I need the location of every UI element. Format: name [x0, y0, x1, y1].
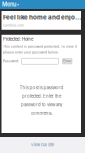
- staticText: Menu: [2, 1, 16, 8]
- staticText: This content is password protected. To v…: [3, 45, 77, 54]
- staticText: cambria.com: [3, 23, 24, 27]
- staticText: Feel like home and enjoy...: [3, 13, 81, 21]
- staticText: View Full Site: [31, 143, 54, 147]
- button[interactable]: Menu: [0, 0, 22, 9]
- button[interactable]: View Full Site: [0, 137, 85, 153]
- button[interactable]: Enter: [62, 58, 72, 64]
- staticText: ▾: [17, 2, 19, 7]
- staticText: Enter: [63, 59, 71, 63]
- staticText: Protected: Home: [3, 37, 33, 42]
- staticText: Password:: [3, 59, 19, 63]
- staticText: This post is password protected. Enter t…: [19, 85, 63, 116]
